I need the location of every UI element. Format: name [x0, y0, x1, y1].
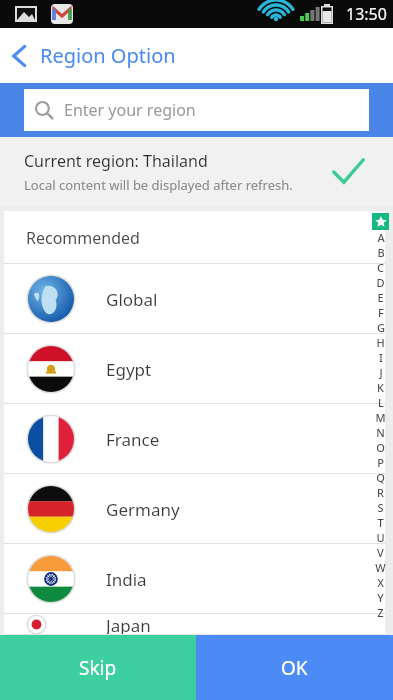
staticText: J: [379, 365, 383, 380]
staticText: A: [377, 230, 385, 245]
staticText: France: [106, 428, 160, 451]
staticText: Y: [377, 590, 384, 605]
button[interactable]: Back: [0, 28, 40, 83]
button[interactable]: Japan: [4, 614, 385, 635]
button[interactable]: Egypt: [4, 334, 385, 404]
staticText: C: [377, 260, 384, 275]
button[interactable]: OK: [196, 635, 393, 700]
button[interactable]: Skip: [0, 635, 196, 700]
staticText: P: [377, 455, 384, 470]
staticText: B: [377, 245, 385, 260]
staticText: D: [376, 275, 385, 290]
staticText: I: [379, 350, 383, 365]
button[interactable]: Germany: [4, 474, 385, 544]
staticText: E: [377, 290, 384, 305]
staticText: 13:50: [346, 3, 387, 25]
staticText: Germany: [106, 498, 180, 521]
staticText: T: [377, 515, 384, 530]
staticText: N: [376, 425, 385, 440]
button[interactable]: France: [4, 404, 385, 474]
button[interactable]: Enter your region: [24, 89, 369, 131]
staticText: F: [378, 305, 384, 320]
staticText: V: [377, 545, 384, 560]
staticText: Z: [377, 605, 384, 620]
staticText: K: [377, 380, 384, 395]
staticText: Egypt: [106, 358, 152, 381]
staticText: Global: [106, 288, 158, 311]
button[interactable]: A: [368, 213, 393, 620]
staticText: OK: [281, 655, 308, 681]
button[interactable]: Recommended: [4, 211, 385, 264]
button[interactable]: India: [4, 544, 385, 614]
staticText: Recommended: [26, 227, 140, 249]
staticText: U: [376, 530, 385, 545]
staticText: Local content will be displayed after re…: [24, 176, 293, 194]
staticText: W: [375, 560, 386, 575]
staticText: Current region: Thailand: [24, 150, 208, 172]
staticText: Region Option: [40, 42, 176, 69]
staticText: G: [377, 320, 385, 335]
staticText: L: [378, 395, 384, 410]
staticText: R: [377, 485, 384, 500]
staticText: H: [376, 335, 385, 350]
staticText: O: [376, 440, 385, 455]
staticText: X: [377, 575, 384, 590]
staticText: Enter your region: [64, 99, 196, 121]
staticText: Japan: [106, 614, 151, 635]
staticText: M: [375, 410, 386, 425]
staticText: Q: [376, 470, 385, 485]
staticText: India: [106, 568, 147, 591]
staticText: S: [377, 500, 384, 515]
button[interactable]: Global: [4, 264, 385, 334]
staticText: Skip: [79, 655, 117, 681]
